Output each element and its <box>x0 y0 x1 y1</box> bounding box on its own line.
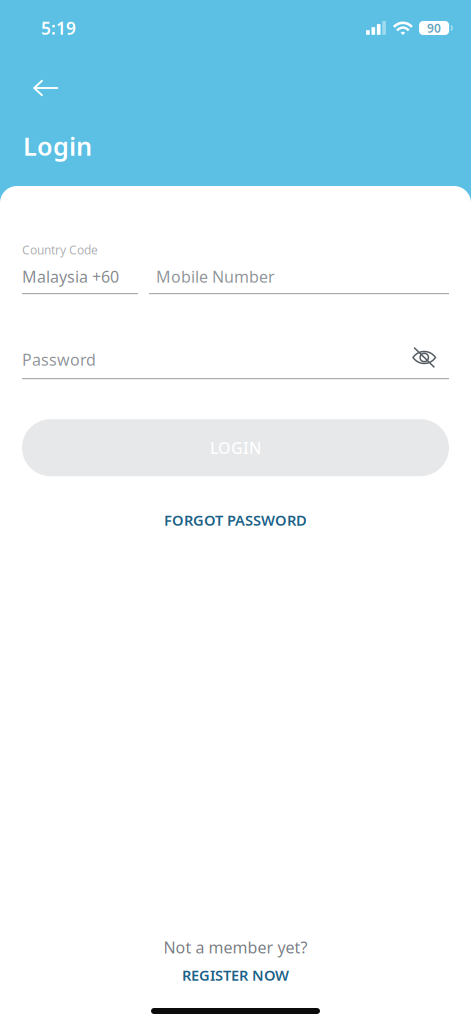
button[interactable]: Show password <box>412 347 449 368</box>
staticText: 90 <box>427 20 441 36</box>
staticText: Login <box>23 129 92 163</box>
staticText: FORGOT PASSWORD <box>164 510 307 530</box>
staticText: REGISTER NOW <box>182 965 289 985</box>
button[interactable]: FORGOT PASSWORD <box>164 509 307 531</box>
staticText: Password <box>22 349 96 370</box>
staticText: Country Code <box>22 242 98 258</box>
staticText: Mobile Number <box>156 266 275 287</box>
staticText: LOGIN <box>210 437 261 458</box>
button[interactable]: REGISTER NOW <box>182 966 289 984</box>
staticText: Malaysia +60 <box>22 266 119 287</box>
button[interactable]: LOGIN <box>22 419 449 476</box>
staticText: Not a member yet? <box>163 937 307 958</box>
staticText: 5:19 <box>41 16 76 39</box>
button[interactable]: Back <box>33 71 77 105</box>
